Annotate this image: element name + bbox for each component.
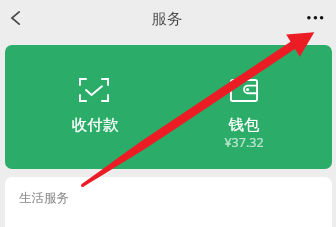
button[interactable]: 收付款 — [5, 45, 169, 169]
staticText: 服务 — [87, 9, 247, 29]
button[interactable]: More options — [297, 0, 333, 36]
staticText: 收付款 — [13, 115, 177, 135]
button[interactable]: 钱包 — [169, 45, 332, 169]
staticText: ¥37.32 — [162, 134, 326, 151]
staticText: 生活服务 — [19, 190, 69, 206]
button[interactable]: Back — [0, 0, 33, 36]
staticText: 钱包 — [162, 115, 326, 135]
